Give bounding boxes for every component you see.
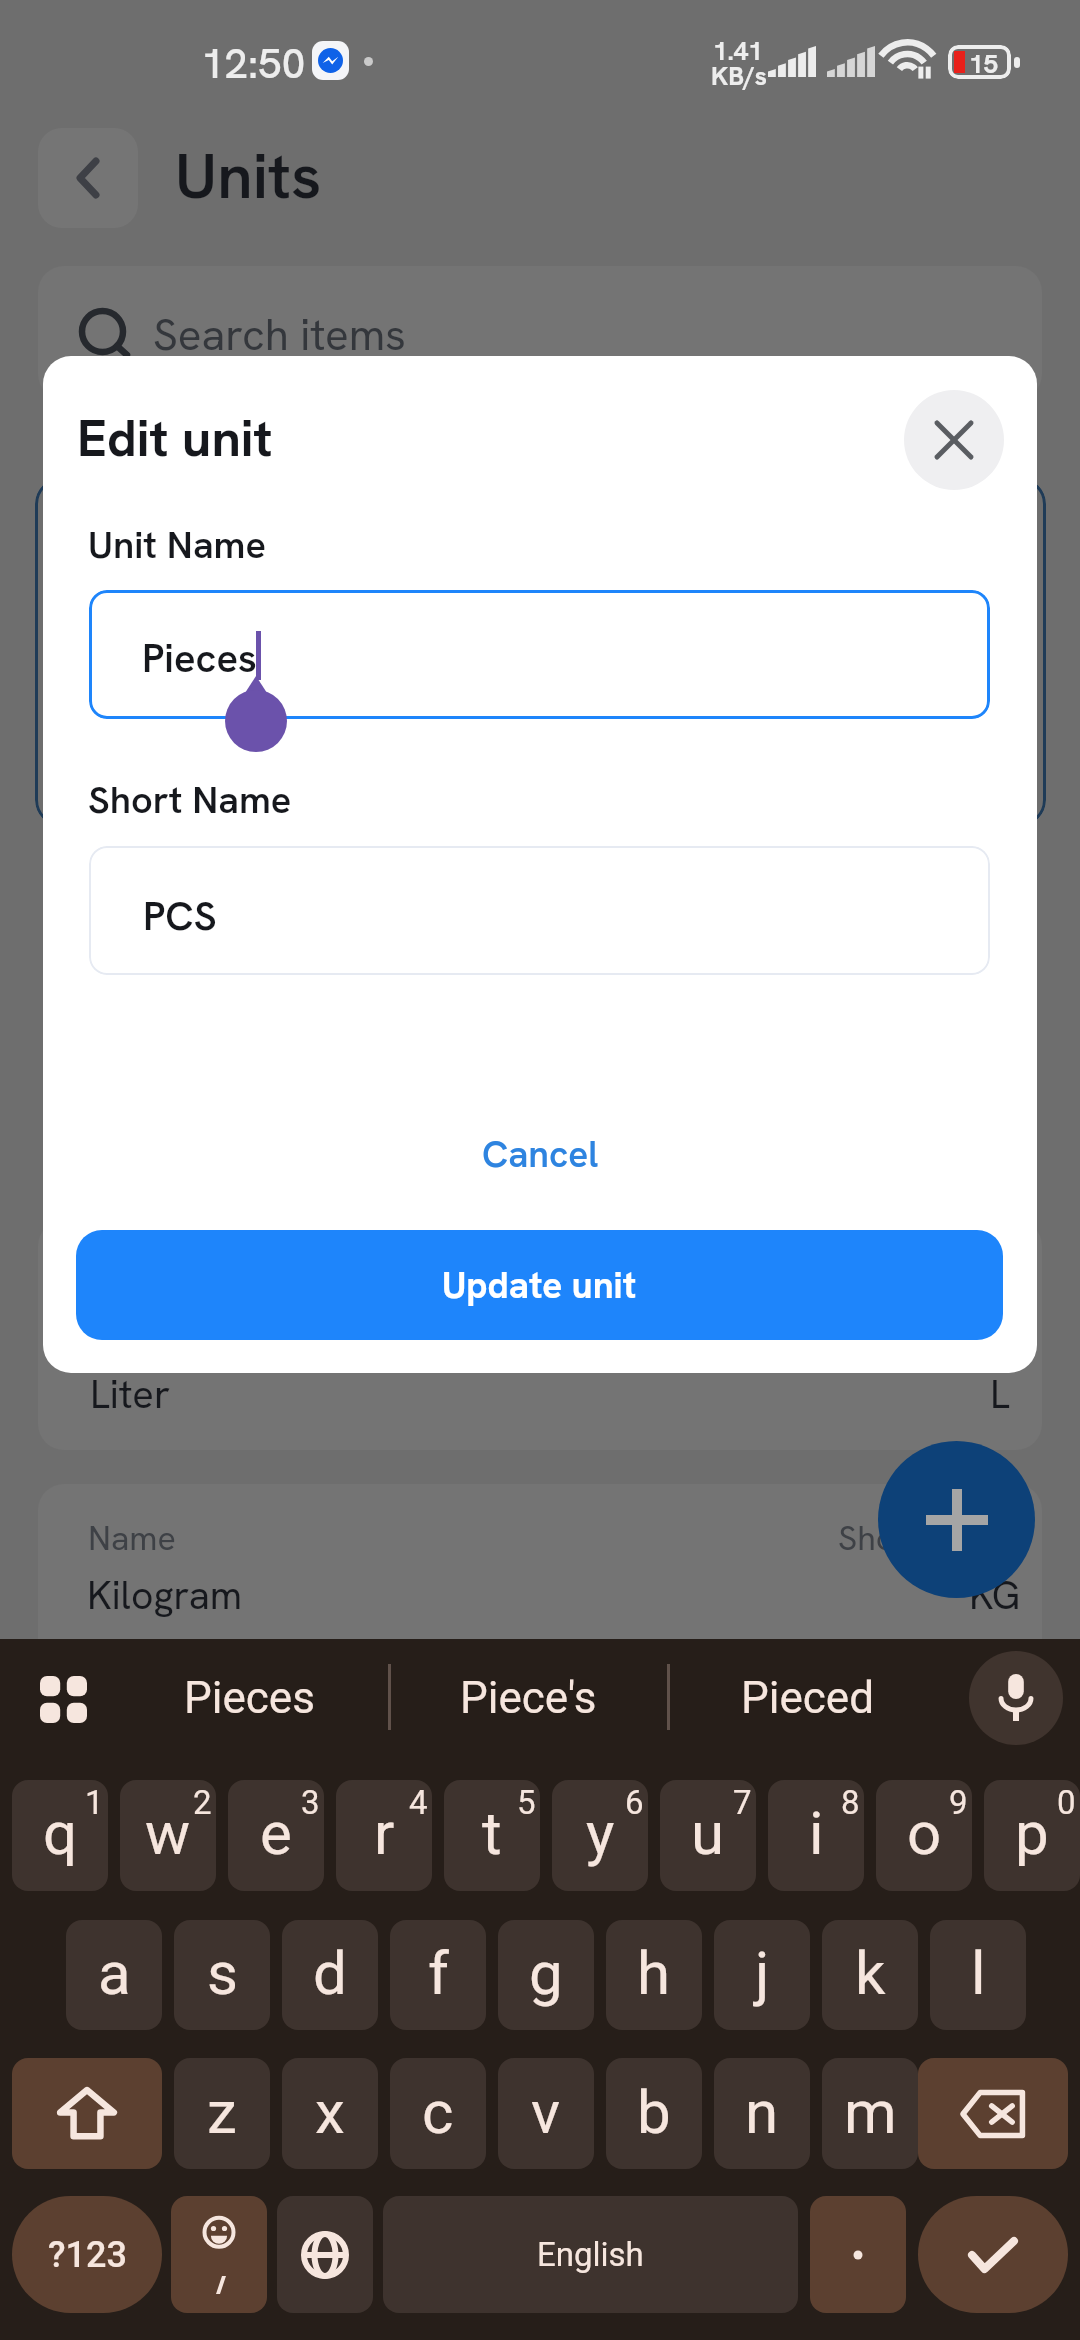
button[interactable]: Update unit [76,1230,1003,1340]
staticText: Units [175,134,322,217]
staticText: o [907,1798,942,1868]
staticText: KB/s [711,59,768,93]
button[interactable]: Enter [918,2196,1068,2313]
staticText: 6 [625,1783,644,1822]
staticText: f [428,1938,449,2008]
button[interactable] [810,2196,906,2313]
button[interactable]: Back [38,128,138,228]
button[interactable] [38,266,1042,400]
staticText: KG [969,1570,1021,1621]
staticText: Liter [90,1368,171,1420]
staticText: 3 [301,1783,320,1822]
button[interactable]: c [390,2058,486,2169]
button[interactable]: Keyboard toolbar [18,1654,108,1744]
button[interactable]: Change keyboard language [277,2196,373,2313]
button[interactable]: Add unit [878,1441,1035,1598]
button[interactable]: Backspace [918,2058,1068,2169]
button[interactable]: e [228,1780,324,1891]
staticText: Search items [153,306,406,363]
button[interactable]: f [390,1920,486,2030]
button[interactable]: r [336,1780,432,1891]
button[interactable]: l [930,1920,1026,2030]
staticText: Edit unit [77,404,273,472]
button[interactable]: m [822,2058,918,2169]
button[interactable]: a [66,1920,162,2030]
staticText: Name [88,1516,176,1560]
staticText: 0 [1057,1783,1076,1822]
staticText: y [586,1798,615,1868]
button[interactable]: q [12,1780,108,1891]
staticText: Pieced [741,1672,874,1724]
button[interactable]: j [714,1920,810,2030]
button[interactable]: k [822,1920,918,2030]
staticText: Cancel [482,1130,599,1178]
staticText: z [207,2077,237,2147]
staticText: c [422,2077,454,2147]
staticText: s [207,1938,238,2008]
staticText: x [315,2077,345,2147]
staticText: 5 [517,1783,536,1822]
staticText: w [145,1798,191,1868]
staticText: 8 [841,1783,860,1822]
staticText: v [531,2077,561,2147]
staticText: n [745,2077,779,2147]
staticText: b [637,2077,671,2147]
staticText: p [1015,1798,1049,1868]
staticText: Update unit [442,1261,637,1309]
button[interactable]: h [606,1920,702,2030]
staticText: 1.41 [713,34,763,68]
button[interactable]: Voice input [969,1651,1063,1745]
button[interactable]: o [876,1780,972,1891]
staticText: Sho [838,1516,896,1560]
button[interactable]: Piece's [389,1639,668,1757]
button[interactable]: p [984,1780,1080,1891]
button[interactable]: z [174,2058,270,2169]
staticText: r [374,1798,395,1868]
button[interactable]: b [606,2058,702,2169]
staticText: 4 [409,1783,428,1822]
button[interactable]: PCS [89,846,990,975]
button[interactable]: u [660,1780,756,1891]
button[interactable]: v [498,2058,594,2169]
staticText: ?123 [48,2234,127,2276]
staticText: m [844,2077,897,2147]
staticText: Unit Name [88,520,266,570]
button[interactable]: English [383,2196,798,2313]
staticText: L [990,1368,1010,1420]
button[interactable]: Pieces [110,1639,389,1757]
staticText: Pieces [142,632,257,684]
button[interactable]: i [768,1780,864,1891]
staticText: 2 [193,1783,212,1822]
button[interactable] [38,1220,1042,1450]
button[interactable]: g [498,1920,594,2030]
staticText: English [537,2235,644,2274]
staticText: i [809,1798,824,1868]
button[interactable]: ?123 [12,2196,162,2313]
staticText: k [855,1938,886,2008]
button[interactable]: Emoji [171,2196,267,2313]
button[interactable]: Pieces [89,590,990,719]
button[interactable]: y [552,1780,648,1891]
button[interactable]: t [444,1780,540,1891]
staticText: 12:50 [201,36,306,91]
staticText: j [755,1938,770,2008]
staticText: u [691,1798,725,1868]
button[interactable]: Pieced [668,1639,947,1757]
staticText: PCS [143,890,217,942]
staticText: e [260,1798,292,1868]
staticText: a [98,1938,131,2008]
button[interactable]: x [282,2058,378,2169]
button[interactable]: n [714,2058,810,2169]
button[interactable]: Shift [12,2058,162,2169]
staticText: d [313,1938,347,2008]
button[interactable]: Cancel [418,1108,662,1200]
staticText: l [971,1938,986,2008]
staticText: Kilogram [87,1570,243,1621]
staticText: Piece's [460,1672,597,1724]
button[interactable]: w [120,1780,216,1891]
button[interactable] [38,1484,1042,1714]
staticText: 7 [733,1783,752,1822]
button[interactable]: s [174,1920,270,2030]
button[interactable]: Close [904,390,1004,490]
button[interactable]: d [282,1920,378,2030]
